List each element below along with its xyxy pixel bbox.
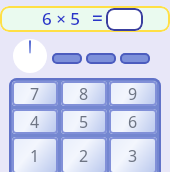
staticText: 9 (128, 83, 138, 105)
staticText: 2 (79, 145, 89, 167)
staticText: 3 (128, 145, 138, 167)
staticText: 4 (30, 111, 40, 133)
staticText: = (92, 5, 103, 31)
staticText: 5 (79, 111, 89, 133)
staticText: 8 (79, 83, 89, 105)
staticText: 6 (128, 111, 138, 133)
staticText: 1 (30, 145, 40, 167)
staticText: 6 × 5 (42, 7, 81, 30)
staticText: 7 (30, 83, 40, 105)
